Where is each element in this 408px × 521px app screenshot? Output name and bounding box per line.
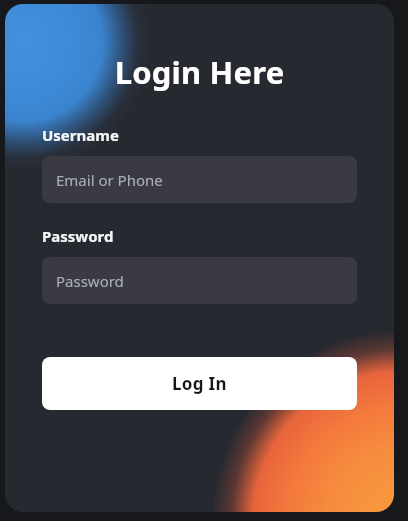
staticText: Username [42, 125, 119, 145]
button[interactable]: Username input [42, 156, 357, 203]
button[interactable]: Log In [42, 357, 357, 410]
staticText: Email or Phone [56, 170, 163, 190]
staticText: Log In [172, 372, 227, 395]
button[interactable]: Password input [42, 257, 357, 304]
staticText: Login Here [5, 51, 394, 93]
staticText: Password [42, 226, 114, 246]
staticText: Password [56, 271, 124, 291]
